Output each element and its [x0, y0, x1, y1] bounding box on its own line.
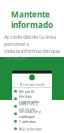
staticText: Simulación y catálogos [19, 108, 41, 119]
button[interactable]: Mis trámites [12, 125, 52, 133]
staticText: Mis trámites [19, 126, 42, 131]
staticText: Informes y servicios [19, 101, 38, 112]
staticText: Accede desde tu área personal a toda la … [4, 33, 60, 61]
button[interactable]: Contratos [12, 118, 52, 125]
button[interactable]: Simulación y catálogos [12, 110, 52, 118]
staticText: Mi perfil [19, 89, 34, 94]
staticText: Recibos registrados [19, 93, 39, 104]
staticText: Área personal [19, 81, 44, 87]
button[interactable]: Mi perfil [12, 88, 52, 95]
staticText: Mantente informado [11, 9, 53, 30]
button[interactable]: Informes y servicios [12, 103, 52, 110]
staticText: Contratos [19, 119, 36, 124]
button[interactable]: Recibos registrados [12, 95, 52, 103]
